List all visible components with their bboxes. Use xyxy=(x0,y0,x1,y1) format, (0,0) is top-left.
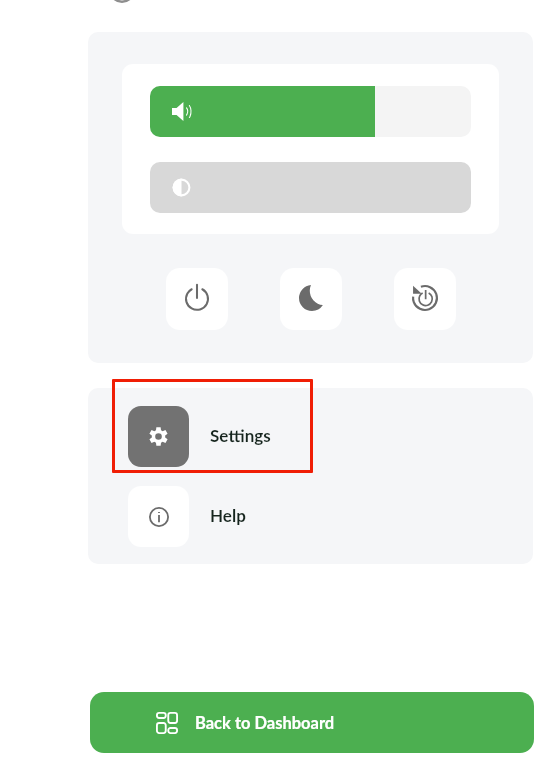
button[interactable]: Back to Dashboard xyxy=(90,692,534,753)
button[interactable]: Brightness xyxy=(150,162,471,213)
button[interactable]: Restart xyxy=(394,268,456,330)
button[interactable]: Volume xyxy=(150,86,471,137)
button[interactable]: Settings xyxy=(112,379,313,473)
staticText: Back to Dashboard xyxy=(195,713,335,733)
button[interactable]: Sleep mode xyxy=(280,268,342,330)
button[interactable]: Power xyxy=(166,268,228,330)
button[interactable]: Help xyxy=(112,473,313,559)
staticText: Settings xyxy=(210,425,271,445)
staticText: Help xyxy=(210,505,246,525)
